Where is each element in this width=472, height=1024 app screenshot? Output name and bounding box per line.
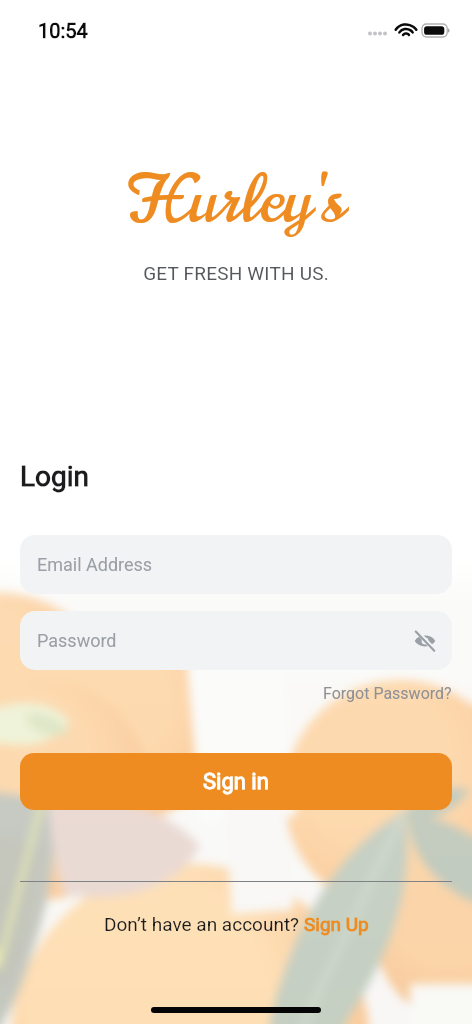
staticText: Don’t have an account? <box>104 913 304 935</box>
button[interactable]: Password <box>20 611 452 670</box>
button[interactable]: Show password <box>411 627 439 655</box>
button[interactable]: Sign Up <box>304 913 369 935</box>
staticText: Password <box>37 630 117 651</box>
staticText: Hurley's <box>128 153 345 246</box>
button[interactable]: Sign in <box>20 753 452 810</box>
button[interactable]: Forgot Password? <box>323 682 452 705</box>
staticText: GET FRESH WITH US. <box>143 262 329 284</box>
button[interactable]: Email Address <box>20 535 452 594</box>
staticText: 10:54 <box>38 19 88 42</box>
staticText: Login <box>20 460 90 493</box>
staticText: Sign in <box>203 769 269 795</box>
staticText: Email Address <box>37 554 153 575</box>
